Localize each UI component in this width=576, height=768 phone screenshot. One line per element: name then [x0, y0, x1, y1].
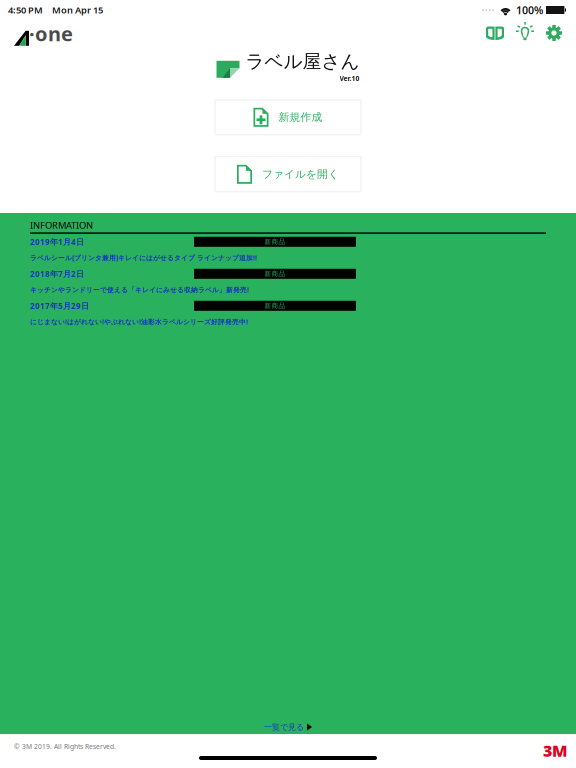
- button[interactable]: ファイルを開く: [215, 157, 361, 192]
- staticText: ·one: [29, 20, 73, 47]
- staticText: にじまない!はがれない!やぶれない!油彩水ラベルシリーズ好評発売中!: [30, 317, 248, 326]
- staticText: ラベル屋さん: [245, 50, 359, 73]
- staticText: 新商品: [264, 302, 285, 310]
- staticText: 2019年1月4日: [30, 236, 84, 247]
- button[interactable]: 新商品: [30, 266, 546, 298]
- staticText: 新商品: [264, 238, 285, 246]
- staticText: ファイルを開く: [262, 168, 339, 181]
- staticText: 一覧で見る: [264, 722, 304, 732]
- staticText: 2017年5月29日: [30, 300, 89, 311]
- staticText: INFORMATION: [30, 219, 93, 231]
- staticText: 3M: [543, 740, 567, 761]
- button[interactable]: 新規作成: [215, 100, 361, 135]
- button[interactable]: Settings: [540, 21, 568, 45]
- button[interactable]: Tips: [510, 21, 540, 45]
- staticText: 100%: [516, 3, 543, 17]
- button[interactable]: 新商品: [30, 298, 546, 330]
- button[interactable]: 新商品: [30, 234, 546, 266]
- staticText: 新商品: [264, 270, 285, 278]
- staticText: Mon Apr 15: [52, 4, 103, 16]
- staticText: 新規作成: [278, 111, 322, 124]
- button[interactable]: 一覧で見る: [30, 720, 546, 734]
- staticText: 2018年7月2日: [30, 268, 84, 279]
- staticText: キッチンやランドリーで使える「キレイにみせる収納ラベル」新発売!: [30, 285, 249, 294]
- staticText: ラベルシール[プリンタ兼用]キレイにはがせるタイプ ラインナップ追加!!: [30, 253, 257, 262]
- staticText: © 3M 2019. All Rights Reserved.: [14, 742, 116, 751]
- staticText: Ver.10: [339, 74, 359, 83]
- staticText: 4:50 PM: [8, 4, 43, 16]
- button[interactable]: Manual: [480, 21, 510, 45]
